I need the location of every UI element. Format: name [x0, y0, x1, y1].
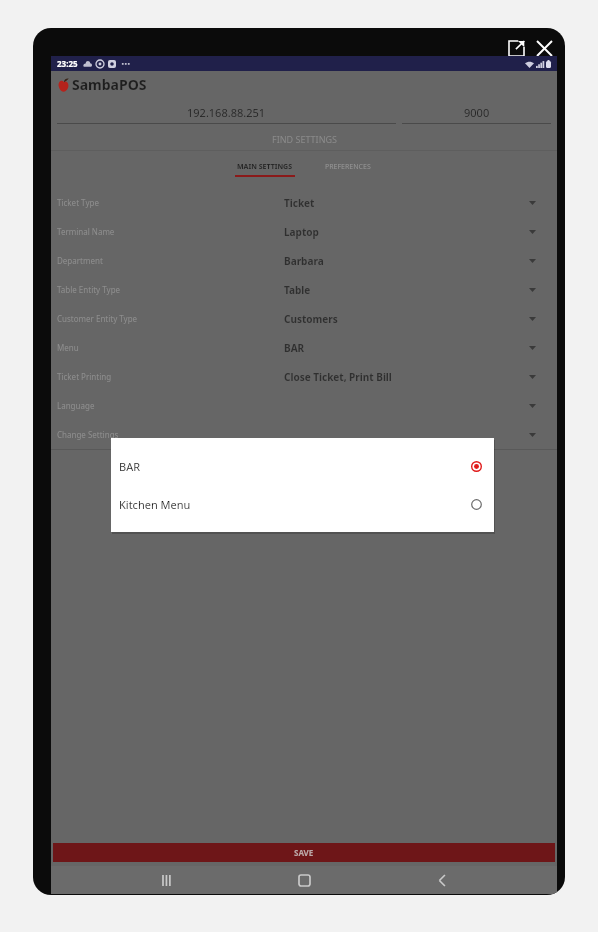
staticText: PREFERENCES — [325, 162, 371, 172]
staticText: 9000 — [464, 105, 490, 120]
button[interactable]: Close — [531, 35, 557, 61]
staticText: Table Entity Type — [57, 284, 121, 295]
button[interactable]: FIND SETTINGS — [51, 128, 557, 150]
button[interactable]: SAVE — [53, 843, 555, 862]
button[interactable]: Recent apps — [145, 866, 189, 894]
button[interactable]: Home — [282, 866, 326, 894]
button[interactable]: PREFERENCES — [315, 159, 381, 177]
staticText: Department — [57, 255, 103, 266]
button[interactable]: Ticket Type — [51, 188, 557, 217]
staticText: Ticket Type — [57, 197, 99, 208]
staticText: Language — [57, 400, 95, 411]
button[interactable]: Table Entity Type — [51, 275, 557, 304]
button[interactable]: Department — [51, 246, 557, 275]
button[interactable]: MAIN SETTINGS — [227, 159, 303, 177]
staticText: Kitchen Menu — [119, 497, 191, 512]
staticText: Change Settings — [57, 429, 119, 440]
staticText: Close Ticket, Print Bill — [284, 370, 392, 384]
staticText: Ticket Printing — [57, 371, 112, 382]
staticText: Barbara — [284, 254, 324, 268]
staticText: Laptop — [284, 225, 319, 239]
staticText: SAVE — [294, 847, 314, 858]
button[interactable]: Kitchen Menu — [111, 485, 494, 523]
staticText: ⋯ — [121, 59, 130, 69]
button[interactable]: Ticket Printing — [51, 362, 557, 391]
staticText: MAIN SETTINGS — [237, 162, 293, 172]
button[interactable]: Terminal Name — [51, 217, 557, 246]
button[interactable]: Open in new window — [503, 35, 529, 61]
button[interactable]: BAR — [111, 447, 494, 485]
staticText: 192.168.88.251 — [187, 105, 266, 120]
staticText: Table — [284, 283, 311, 297]
button[interactable]: 192.168.88.251 — [57, 105, 396, 124]
staticText: Customer Entity Type — [57, 313, 138, 324]
staticText: SambaPOS — [72, 75, 147, 94]
button[interactable]: Menu — [51, 333, 557, 362]
staticText: 23:25 — [57, 58, 78, 69]
button[interactable]: Customer Entity Type — [51, 304, 557, 333]
staticText: FIND SETTINGS — [272, 133, 337, 145]
staticText: Menu — [57, 342, 79, 353]
button[interactable]: Back — [420, 866, 464, 894]
staticText: Ticket — [284, 196, 315, 210]
staticText: BAR — [119, 459, 141, 474]
button[interactable]: 9000 — [402, 105, 551, 124]
button[interactable]: Change Settings — [51, 420, 557, 449]
staticText: Terminal Name — [57, 226, 115, 237]
staticText: Customers — [284, 312, 338, 326]
staticText: BAR — [284, 341, 305, 355]
